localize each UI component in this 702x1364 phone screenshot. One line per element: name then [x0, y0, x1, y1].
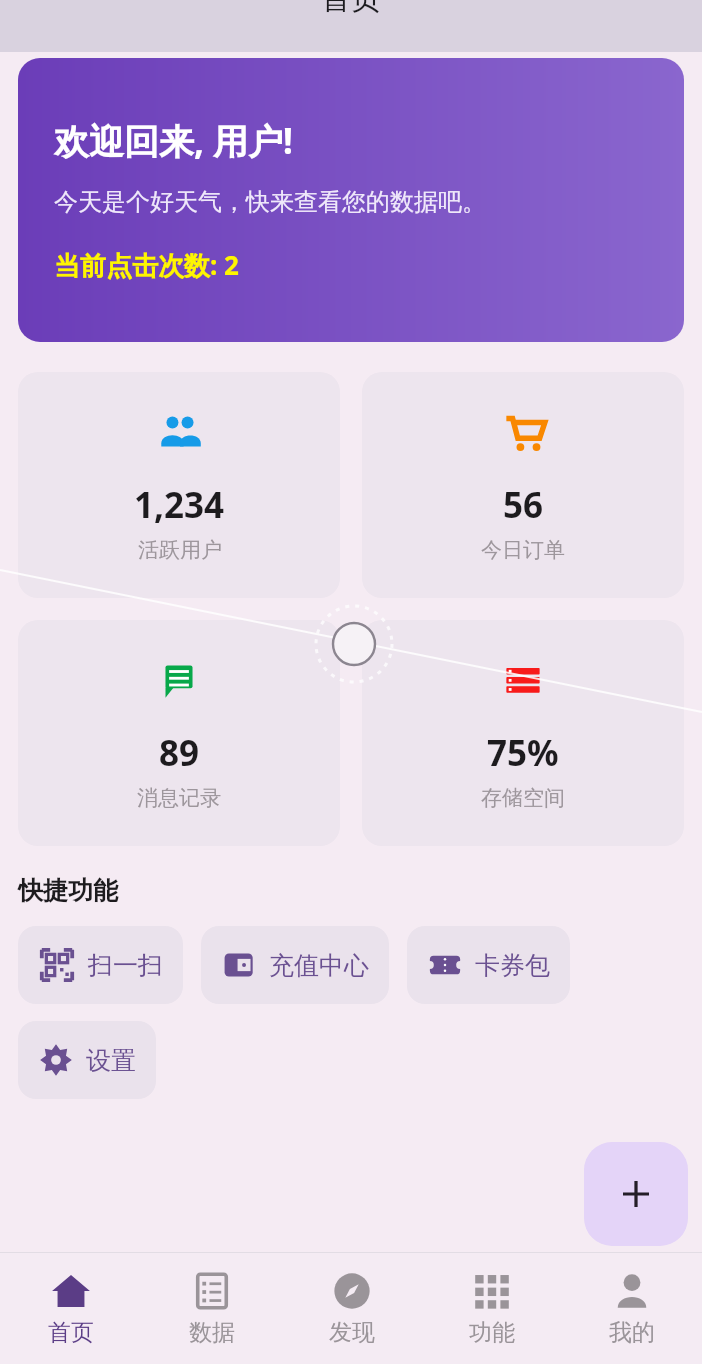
staticText: 今日订单	[481, 537, 565, 563]
button[interactable]: 功能	[422, 1253, 562, 1364]
button[interactable]: 75%	[362, 620, 684, 846]
staticText: 功能	[469, 1318, 515, 1347]
staticText: 快捷功能	[18, 875, 118, 906]
button[interactable]: 56	[362, 372, 684, 598]
staticText: 消息记录	[137, 785, 221, 811]
staticText: 75%	[487, 729, 559, 777]
staticText: 89	[159, 729, 200, 777]
button[interactable]: 89	[18, 620, 340, 846]
staticText: 活跃用户	[138, 537, 222, 563]
button[interactable]: 1,234	[18, 372, 340, 598]
staticText: 当前点击次数: 2	[54, 247, 239, 283]
staticText: 首页	[321, 0, 381, 18]
button[interactable]: 设置	[18, 1021, 156, 1099]
button[interactable]: 扫一扫	[18, 926, 183, 1004]
staticText: 1,234	[134, 481, 225, 529]
button[interactable]: 发现	[282, 1253, 422, 1364]
staticText: 数据	[189, 1318, 235, 1347]
staticText: 扫一扫	[88, 950, 163, 981]
button[interactable]: Add	[584, 1142, 688, 1246]
button[interactable]: 数据	[141, 1253, 282, 1364]
button[interactable]: 卡券包	[407, 926, 570, 1004]
button[interactable]: 欢迎回来, 用户!	[18, 58, 684, 342]
staticText: 56	[503, 481, 544, 529]
button[interactable]: 我的	[562, 1253, 702, 1364]
staticText: 充值中心	[269, 950, 369, 981]
staticText: 设置	[86, 1045, 136, 1076]
button[interactable]: 首页	[0, 1253, 141, 1364]
staticText: 首页	[48, 1318, 94, 1347]
staticText: 欢迎回来, 用户!	[54, 117, 293, 165]
staticText: 我的	[609, 1318, 655, 1347]
button[interactable]: 充值中心	[201, 926, 389, 1004]
staticText: 发现	[329, 1318, 375, 1347]
staticText: 今天是个好天气，快来查看您的数据吧。	[54, 187, 486, 217]
staticText: 存储空间	[481, 785, 565, 811]
staticText: 卡券包	[475, 950, 550, 981]
